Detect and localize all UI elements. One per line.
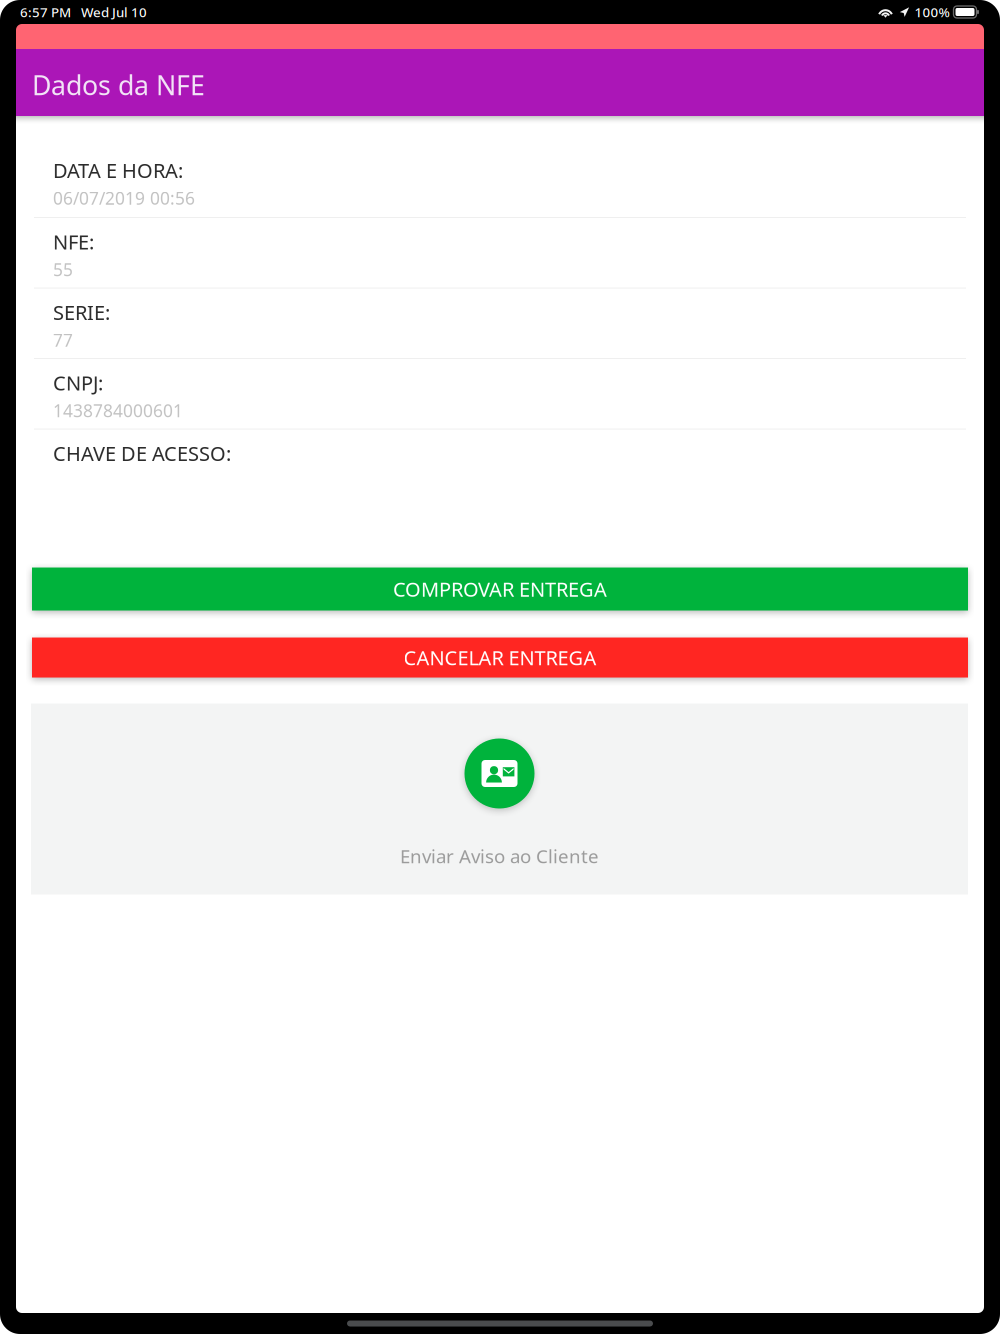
staticText: 06/07/2019 00:56: [53, 187, 195, 210]
staticText: Dados da NFE: [32, 67, 205, 103]
staticText: NFE:: [53, 228, 94, 255]
staticText: CANCELAR ENTREGA: [403, 644, 596, 671]
staticText: Wed Jul 10: [81, 3, 147, 21]
button[interactable]: COMPROVAR ENTREGA: [32, 567, 968, 610]
staticText: 77: [53, 329, 73, 352]
staticText: 55: [53, 258, 73, 281]
staticText: DATA E HORA:: [53, 157, 183, 184]
staticText: Enviar Aviso ao Cliente: [400, 843, 599, 868]
staticText: 100%: [914, 3, 949, 21]
staticText: SERIE:: [53, 299, 110, 326]
staticText: CNPJ:: [53, 369, 103, 396]
staticText: 6:57 PM: [20, 3, 71, 21]
button[interactable]: Enviar Aviso ao Cliente: [31, 703, 968, 894]
staticText: 1438784000601: [53, 399, 183, 422]
button[interactable]: CANCELAR ENTREGA: [32, 637, 968, 677]
staticText: COMPROVAR ENTREGA: [393, 576, 607, 602]
staticText: CHAVE DE ACESSO:: [53, 440, 231, 467]
